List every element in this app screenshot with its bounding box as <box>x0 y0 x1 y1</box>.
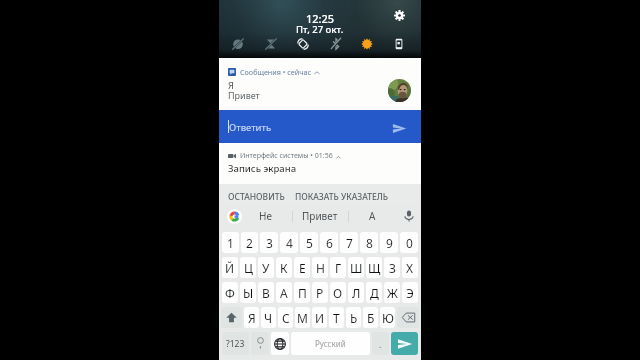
button[interactable]: Settings <box>393 9 406 22</box>
staticText: Ответить <box>229 121 272 134</box>
staticText: Ь <box>350 310 358 326</box>
button[interactable]: 8 <box>360 232 378 253</box>
button[interactable]: Русский <box>291 332 370 355</box>
button[interactable]: В <box>258 282 274 303</box>
button[interactable]: Ч <box>261 307 276 328</box>
button[interactable]: С <box>278 307 293 328</box>
button[interactable]: 6 <box>320 232 338 253</box>
button[interactable]: Send <box>391 332 418 355</box>
button[interactable]: Switch language <box>271 332 289 355</box>
staticText: 8 <box>366 235 373 251</box>
button[interactable]: Cast screen <box>390 35 408 53</box>
button[interactable]: Г <box>330 257 346 278</box>
button[interactable]: ?123 <box>222 332 249 355</box>
staticText: Х <box>406 260 414 276</box>
button[interactable]: П <box>294 282 310 303</box>
button[interactable]: 0 <box>400 232 418 253</box>
staticText: И <box>315 310 325 326</box>
button[interactable]: Я <box>244 307 259 328</box>
staticText: 2 <box>246 235 253 251</box>
button[interactable]: Не <box>245 203 285 229</box>
button[interactable]: ПОКАЗАТЬ УКАЗАТЕЛЬ <box>289 190 395 204</box>
button[interactable]: Л <box>348 282 364 303</box>
button[interactable]: Э <box>402 282 418 303</box>
staticText: ОСТАНОВИТЬ <box>228 191 285 203</box>
button[interactable]: Ь <box>346 307 361 328</box>
staticText: М <box>297 310 308 326</box>
button[interactable]: Ю <box>380 307 395 328</box>
staticText: Я <box>228 79 234 91</box>
button[interactable]: К <box>276 257 292 278</box>
staticText: 7 <box>346 235 353 251</box>
button[interactable]: Й <box>222 257 238 278</box>
button[interactable]: Х <box>402 257 418 278</box>
button[interactable]: Google search <box>222 203 247 229</box>
staticText: Л <box>352 285 361 301</box>
staticText: Запись экрана <box>228 162 297 175</box>
staticText: Т <box>333 310 340 326</box>
staticText: 5 <box>306 235 313 251</box>
button[interactable]: Ответить <box>219 110 421 143</box>
button[interactable]: Mobile data off <box>262 35 280 53</box>
button[interactable]: Contact photo <box>388 79 411 102</box>
staticText: Я <box>248 310 256 326</box>
button[interactable]: 9 <box>380 232 398 253</box>
button[interactable]: Д <box>366 282 382 303</box>
button[interactable]: М <box>295 307 310 328</box>
staticText: Привет <box>228 89 260 101</box>
staticText: В <box>262 285 270 301</box>
button[interactable]: Н <box>312 257 328 278</box>
button[interactable]: 3 <box>260 232 278 253</box>
button[interactable]: Bluetooth off <box>327 35 345 53</box>
button[interactable]: У <box>258 257 274 278</box>
button[interactable]: Б <box>363 307 378 328</box>
button[interactable]: Emoji and comma <box>251 332 269 355</box>
staticText: Ю <box>382 310 394 326</box>
staticText: Не <box>259 209 272 223</box>
staticText: О <box>333 285 343 301</box>
button[interactable]: Ш <box>348 257 364 278</box>
staticText: Э <box>406 285 414 301</box>
staticText: З <box>389 260 396 276</box>
button[interactable]: 2 <box>241 232 258 253</box>
staticText: Ы <box>243 285 254 301</box>
button[interactable]: Shift <box>221 307 242 328</box>
staticText: 0 <box>406 235 413 251</box>
button[interactable]: Brightness <box>358 35 376 53</box>
button[interactable]: Привет <box>293 203 347 229</box>
button[interactable]: Auto-rotate <box>294 35 312 53</box>
button[interactable]: Backspace <box>397 307 419 328</box>
staticText: Ж <box>387 285 398 301</box>
button[interactable]: Р <box>312 282 328 303</box>
staticText: ?123 <box>226 338 245 350</box>
button[interactable]: Ф <box>222 282 238 303</box>
button[interactable]: Т <box>329 307 344 328</box>
button[interactable]: Ц <box>240 257 256 278</box>
button[interactable]: . <box>372 332 389 355</box>
staticText: Б <box>367 310 375 326</box>
button[interactable]: 5 <box>300 232 318 253</box>
button[interactable]: И <box>312 307 327 328</box>
staticText: Е <box>299 260 306 276</box>
button[interactable]: 7 <box>340 232 358 253</box>
button[interactable]: О <box>330 282 346 303</box>
staticText: С <box>282 310 290 326</box>
button[interactable]: 4 <box>280 232 298 253</box>
button[interactable]: Voice input <box>397 203 421 229</box>
button[interactable]: А <box>349 203 396 229</box>
staticText: Привет <box>302 209 338 223</box>
button[interactable]: Ж <box>384 282 400 303</box>
button[interactable]: 1 <box>222 232 239 253</box>
staticText: 4 <box>286 235 293 251</box>
button[interactable]: Ы <box>240 282 256 303</box>
staticText: Р <box>316 285 324 301</box>
staticText: Сообщения • сейчас <box>240 67 311 77</box>
button[interactable]: Е <box>294 257 310 278</box>
button[interactable]: Щ <box>366 257 382 278</box>
button[interactable]: А <box>276 282 292 303</box>
button[interactable]: Wi-Fi off <box>229 35 247 53</box>
staticText: Пт, 27 окт. <box>296 23 344 36</box>
button[interactable]: ОСТАНОВИТЬ <box>222 190 291 204</box>
staticText: Ц <box>244 260 253 276</box>
button[interactable]: З <box>384 257 400 278</box>
